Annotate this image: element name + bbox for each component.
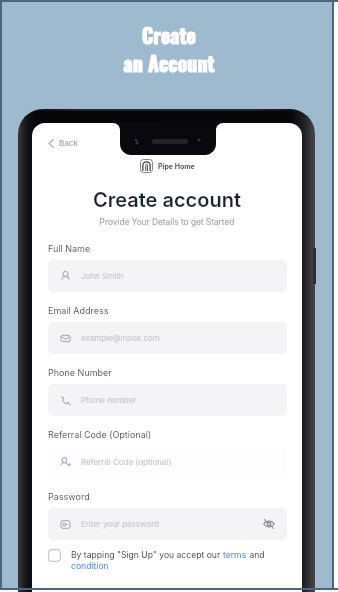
staticText: Email Address [48, 305, 109, 316]
staticText: Referral Code (optional) [81, 457, 172, 467]
staticText: Enter your password [81, 519, 160, 529]
staticText: Create account [32, 188, 302, 212]
staticText: Referral Code (Optional) [48, 429, 152, 440]
button[interactable]: John Smith [48, 260, 287, 292]
button[interactable]: Enter your password [48, 508, 287, 540]
staticText: Provide Your Details to get Started [32, 217, 302, 227]
button[interactable] [48, 549, 61, 562]
button[interactable]: condition [71, 561, 109, 571]
button[interactable]: Back [48, 133, 78, 153]
button[interactable]: Show password [260, 515, 278, 533]
button[interactable]: Phone number [48, 384, 287, 416]
staticText: Back [59, 138, 78, 148]
staticText: Full Name [48, 243, 91, 254]
staticText: Create [0, 20, 338, 50]
staticText: and [247, 550, 265, 560]
button[interactable]: example@inbox.com [48, 322, 287, 354]
staticText: Phone Number [48, 367, 112, 378]
button[interactable]: terms [223, 550, 247, 560]
button[interactable]: Referral Code (optional) [48, 446, 287, 478]
staticText: John Smith [81, 271, 124, 281]
staticText: Phone number [81, 395, 137, 405]
staticText: example@inbox.com [81, 333, 160, 343]
staticText: Pipe Home [158, 162, 195, 170]
staticText: an Account [0, 48, 338, 78]
staticText: By tapping "Sign Up" you accept our [71, 550, 223, 560]
staticText: Password [48, 491, 90, 502]
